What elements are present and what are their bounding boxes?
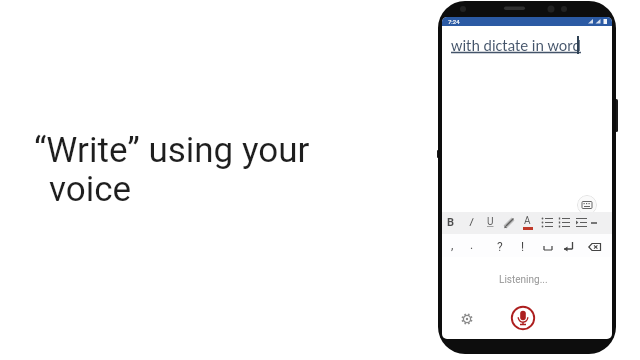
button[interactable] — [461, 313, 473, 325]
button[interactable] — [577, 195, 597, 215]
button[interactable]: U — [484, 214, 498, 232]
staticText: , — [451, 238, 454, 252]
button[interactable] — [575, 216, 589, 230]
button[interactable]: ? — [493, 234, 507, 257]
button[interactable] — [538, 234, 554, 257]
staticText: B — [447, 216, 455, 229]
button[interactable] — [503, 215, 517, 231]
button[interactable]: . — [465, 234, 479, 257]
staticText: I — [469, 216, 472, 229]
staticText: A — [524, 215, 531, 227]
button[interactable]: , — [446, 234, 460, 257]
button[interactable]: A — [521, 214, 535, 232]
button[interactable]: ! — [516, 234, 530, 257]
staticText: ! — [521, 240, 525, 254]
button[interactable] — [541, 216, 555, 230]
button[interactable] — [584, 234, 602, 257]
staticText: Listening... — [499, 274, 548, 286]
staticText: . — [470, 238, 474, 252]
button[interactable] — [510, 305, 536, 331]
button[interactable]: I — [465, 214, 478, 232]
button[interactable] — [558, 216, 572, 230]
staticText: voice — [49, 169, 132, 210]
button[interactable]: B — [444, 214, 459, 232]
staticText: U — [487, 216, 494, 228]
staticText: ? — [497, 240, 503, 254]
staticText: with dictate in word — [451, 36, 581, 56]
staticText: “Write” using your — [34, 130, 310, 171]
button[interactable] — [560, 234, 576, 257]
staticText: 7:24 — [448, 18, 460, 25]
